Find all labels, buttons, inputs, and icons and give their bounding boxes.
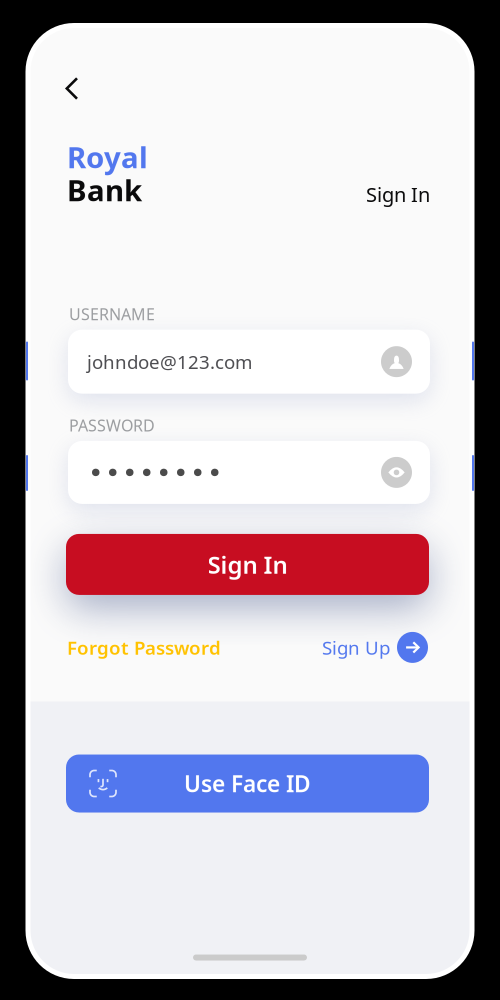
staticText: PASSWORD <box>69 415 155 436</box>
staticText: Royal <box>67 137 148 176</box>
button[interactable]: Forgot Password <box>67 635 221 660</box>
staticText: Sign In <box>366 181 430 207</box>
staticText: Sign Up <box>322 635 390 660</box>
staticText: Forgot Password <box>67 635 221 660</box>
staticText: Bank <box>67 170 142 209</box>
button[interactable]: Sign Up <box>322 632 428 663</box>
button[interactable]: Use Face ID <box>66 754 429 812</box>
button[interactable]: Back <box>50 66 94 110</box>
staticText: Use Face ID <box>184 768 311 798</box>
button[interactable]: Sign In <box>366 181 430 209</box>
staticText: johndoe@123.com <box>87 349 252 374</box>
staticText: USERNAME <box>69 303 155 325</box>
button[interactable]: Show password <box>381 457 412 488</box>
staticText: Sign In <box>207 548 287 580</box>
button[interactable]: Sign In <box>66 534 429 595</box>
